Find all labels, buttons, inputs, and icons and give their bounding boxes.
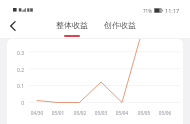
staticText: 71% — [143, 8, 152, 14]
staticText: 整体收益 — [56, 20, 88, 30]
staticText: 05/03 — [92, 110, 110, 116]
staticText: 05/02 — [71, 110, 89, 116]
staticText: 0 — [10, 100, 24, 107]
staticText: 05/04 — [113, 110, 131, 116]
staticText: 0.1 — [10, 83, 24, 90]
staticText: 04/30 — [28, 110, 46, 116]
button[interactable]: Back — [0, 14, 26, 38]
staticText: 11:17 — [165, 7, 180, 14]
staticText: 0.2 — [10, 67, 24, 74]
button[interactable]: 创作收益 — [104, 14, 136, 38]
staticText: 0.3 — [10, 50, 24, 57]
staticText: 创作收益 — [104, 20, 136, 30]
staticText: 05/05 — [135, 110, 153, 116]
staticText: 05/06 — [156, 110, 174, 116]
staticText: 05/01 — [49, 110, 67, 116]
button[interactable]: 整体收益 — [56, 14, 88, 38]
